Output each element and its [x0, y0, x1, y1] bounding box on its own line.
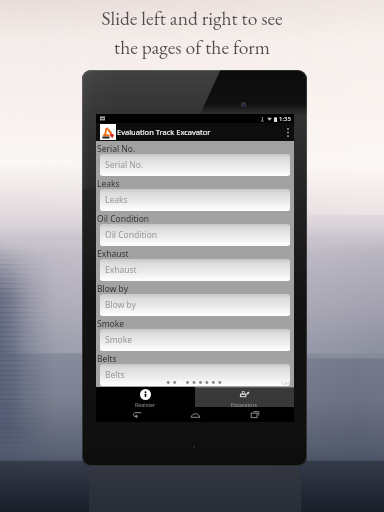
button[interactable]: Smoke	[100, 329, 290, 351]
button[interactable]: Exhaust	[100, 259, 290, 281]
button[interactable]: More options	[281, 123, 294, 141]
staticText: the pages of the form	[114, 34, 270, 59]
staticText: Blow by	[105, 299, 136, 311]
button[interactable]: Excavators	[195, 387, 294, 407]
staticText: Slide left and right to see	[101, 5, 283, 30]
button[interactable]: Home	[175, 407, 215, 422]
staticText: Oil Condition	[105, 229, 158, 241]
staticText: Excavators	[231, 401, 258, 407]
staticText: Register	[135, 401, 156, 407]
staticText: Serial No.	[97, 143, 136, 154]
staticText: Belts	[105, 369, 125, 381]
button[interactable]: Recent apps	[235, 407, 275, 422]
button[interactable]: Blow by	[100, 294, 290, 316]
button[interactable]: Oil Condition	[100, 224, 290, 246]
staticText: Exhaust	[97, 248, 129, 259]
button[interactable]: Serial No.	[100, 154, 290, 176]
staticText: Evaluation Track Excavator	[117, 127, 211, 137]
button[interactable]: Register	[96, 387, 195, 407]
button[interactable]: Back	[116, 407, 156, 422]
button[interactable]: Belts	[100, 364, 290, 386]
staticText: Smoke	[105, 334, 133, 346]
staticText: Leaks	[105, 194, 128, 206]
staticText: Exhaust	[105, 264, 137, 276]
staticText: Smoke	[97, 318, 125, 329]
button[interactable]: Leaks	[100, 189, 290, 211]
staticText: Oil Condition	[97, 213, 150, 224]
staticText: Blow by	[97, 283, 128, 294]
staticText: Serial No.	[105, 159, 144, 171]
staticText: 1:35	[279, 115, 291, 123]
staticText: Belts	[97, 353, 117, 364]
staticText: 1 of 9	[281, 381, 291, 386]
staticText: Leaks	[97, 178, 120, 189]
